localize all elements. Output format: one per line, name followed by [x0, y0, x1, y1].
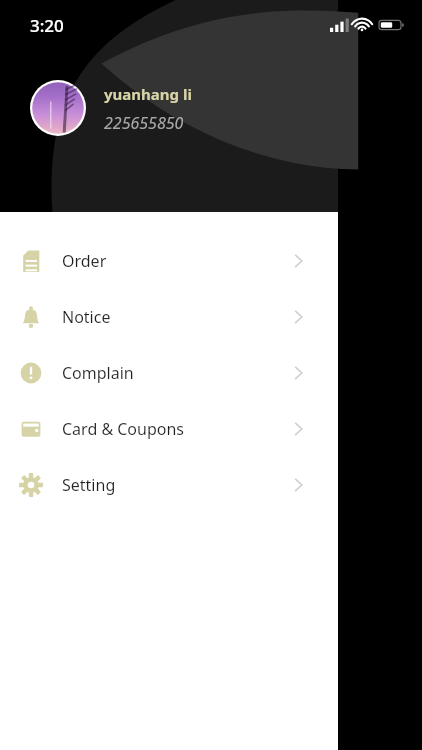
staticText: Complain — [62, 362, 134, 384]
button[interactable]: Setting — [0, 457, 338, 513]
staticText: Setting — [62, 474, 116, 496]
staticText: 225655850 — [104, 112, 184, 134]
staticText: 3:20 — [30, 14, 64, 37]
button[interactable]: Order — [0, 233, 338, 289]
staticText: Notice — [62, 306, 111, 328]
staticText: Order — [62, 250, 107, 272]
button[interactable]: Notice — [0, 289, 338, 345]
staticText: Card & Coupons — [62, 418, 185, 440]
staticText: yuanhang li — [104, 84, 192, 104]
button[interactable]: Card & Coupons — [0, 401, 338, 457]
button[interactable]: Complain — [0, 345, 338, 401]
